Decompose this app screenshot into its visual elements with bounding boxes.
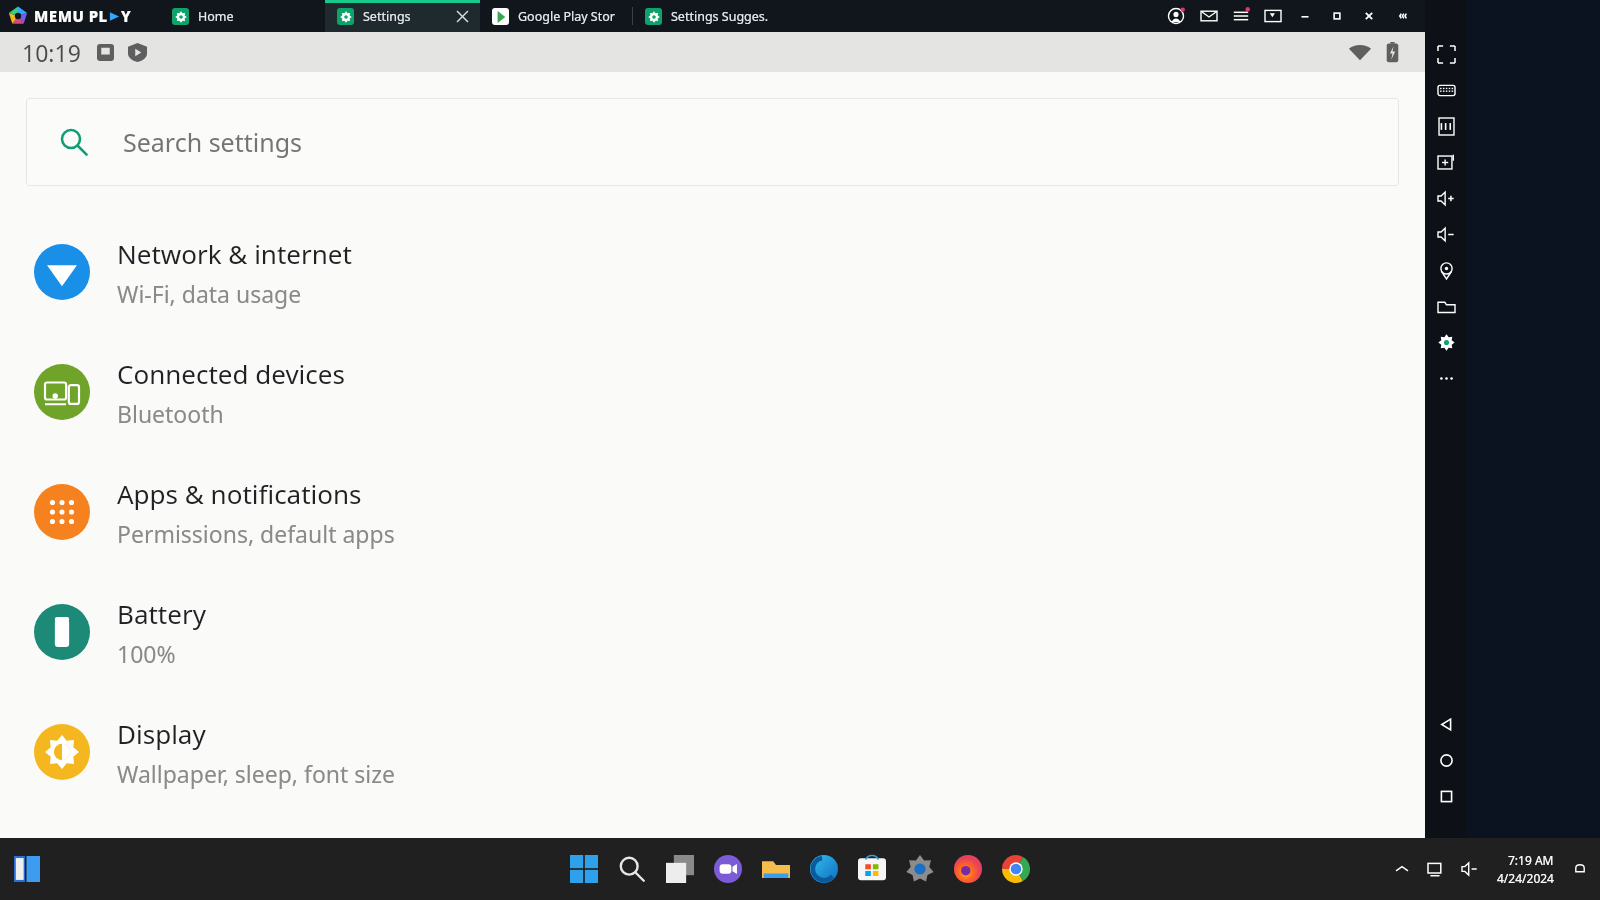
staticText: Connected devices [117,356,345,391]
button[interactable]: Chrome [992,845,1040,893]
button[interactable]: Apps & notifications [0,452,1425,572]
button[interactable]: Menu [1225,0,1257,32]
button[interactable]: Back [1425,706,1467,742]
staticText: Home [198,8,234,25]
button[interactable]: Install APK [1425,108,1467,144]
staticText: Settings [363,8,411,25]
staticText: Wi-Fi, data usage [117,278,302,309]
button[interactable]: Screenshot [1257,0,1289,32]
staticText: 10:19 [22,37,81,68]
staticText: Bluetooth [117,398,224,429]
button[interactable]: Volume down [1425,216,1467,252]
staticText: MEMU PL [34,6,108,26]
staticText: 4/24/2024 [1497,870,1554,886]
button[interactable]: Meet [704,845,752,893]
button[interactable]: Location [1425,252,1467,288]
button[interactable]: More [1425,360,1467,396]
button[interactable]: Google Play Stor [480,0,632,32]
button[interactable]: Microsoft Store [848,845,896,893]
button[interactable]: Close tab [450,4,474,28]
button[interactable]: Display [0,692,1425,812]
button[interactable]: Maximize [1321,0,1353,32]
staticText: 100% [117,638,176,669]
button[interactable]: Shared folder [1425,288,1467,324]
button[interactable]: Home [1425,742,1467,778]
staticText: Wallpaper, sleep, font size [117,758,396,789]
button[interactable]: Volume up [1425,180,1467,216]
staticText: 7:19 AM [1508,852,1554,868]
button[interactable]: Settings [896,845,944,893]
button[interactable]: Edge [800,845,848,893]
button[interactable]: Task view [656,845,704,893]
button[interactable]: Recents [1425,778,1467,814]
button[interactable]: Collapse [1385,0,1421,32]
button[interactable]: Minimize [1289,0,1321,32]
staticText: Settings Sugges. [671,8,769,25]
button[interactable]: App [10,852,44,886]
button[interactable]: Multi window [1425,144,1467,180]
button[interactable]: Network & internet [0,212,1425,332]
staticText: Y [121,6,131,26]
button[interactable]: Settings [325,0,480,32]
staticText: Search settings [123,125,303,159]
button[interactable]: Notifications [1566,855,1594,883]
staticText: Permissions, default apps [117,518,395,549]
staticText: Network & internet [117,236,352,271]
button[interactable]: Close [1353,0,1385,32]
staticText: Google Play Stor [518,8,615,25]
button[interactable]: Fullscreen [1425,36,1467,72]
button[interactable]: Keyboard [1425,72,1467,108]
staticText: Apps & notifications [117,476,362,511]
staticText: Battery [117,596,206,631]
button[interactable]: Firefox [944,845,992,893]
button[interactable]: File Explorer [752,845,800,893]
button[interactable]: Settings Sugges. [633,0,793,32]
button[interactable]: MEMU PL [0,0,160,32]
button[interactable]: Battery [0,572,1425,692]
button[interactable]: Search settings [26,98,1399,186]
button[interactable]: Home [160,0,325,32]
button[interactable]: 7:19 AM [1493,852,1558,886]
button[interactable]: Account [1159,0,1193,32]
button[interactable]: Volume muted [1453,852,1487,886]
button[interactable]: Show hidden icons [1385,852,1419,886]
button[interactable]: Network [1419,852,1453,886]
button[interactable]: Mail [1193,0,1225,32]
button[interactable]: Connected devices [0,332,1425,452]
button[interactable]: Search [608,845,656,893]
button[interactable]: Settings [1425,324,1467,360]
staticText: Display [117,716,206,751]
button[interactable]: Start [560,845,608,893]
